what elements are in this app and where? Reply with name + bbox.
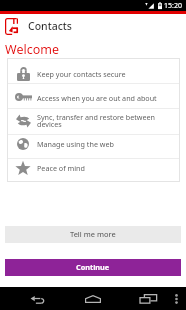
- staticText: 15:20: [164, 1, 182, 11]
- staticText: Contacts: [28, 19, 72, 33]
- staticText: Manage using the web: [37, 139, 114, 149]
- staticText: Peace of mind: [37, 163, 85, 173]
- staticText: Access when you are out and about: [37, 93, 157, 103]
- button[interactable]: Sync, transfer and restore between devic…: [7, 108, 180, 134]
- button[interactable]: Back: [14, 289, 60, 310]
- button[interactable]: Recent apps: [133, 287, 163, 310]
- button[interactable]: Keep your contacts secure: [7, 58, 180, 83]
- staticText: Welcome: [5, 41, 59, 58]
- staticText: Tell me more: [70, 229, 116, 239]
- button[interactable]: Continue: [5, 259, 181, 276]
- button[interactable]: Home: [78, 287, 108, 310]
- staticText: Sync, transfer and restore between devic…: [37, 112, 176, 129]
- button[interactable]: Peace of mind: [7, 158, 180, 182]
- staticText: Keep your contacts secure: [37, 69, 126, 79]
- button[interactable]: Access when you are out and about: [7, 83, 180, 108]
- staticText: Continue: [76, 262, 110, 272]
- button[interactable]: Tell me more: [5, 226, 181, 243]
- button[interactable]: Manage using the web: [7, 134, 180, 158]
- button[interactable]: More options: [168, 287, 184, 310]
